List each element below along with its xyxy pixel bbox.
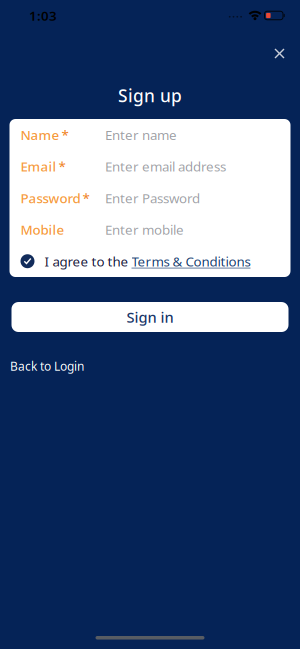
staticText: * [82,189,89,207]
button[interactable]: Password [9,182,290,214]
button[interactable]: Email [9,151,290,182]
staticText: Enter Password [105,189,200,207]
button[interactable]: Close [268,42,290,64]
staticText: Sign up [118,84,182,107]
staticText: Back to Login [10,358,84,374]
button[interactable]: Sign in [11,302,288,332]
staticText: Enter name [105,126,177,144]
staticText: * [61,126,68,144]
staticText: Enter email address [105,158,226,175]
staticText: Name [20,126,59,144]
staticText: Password [20,189,80,207]
staticText: Sign in [126,307,173,327]
staticText: 1:03 [29,7,57,24]
staticText: I agree to the [44,252,131,270]
button[interactable]: Back to Login [10,358,84,374]
staticText: Mobile [20,221,64,238]
button[interactable]: Name [9,119,290,151]
staticText: * [58,158,65,175]
staticText: Enter mobile [105,221,184,238]
button[interactable]: Mobile [9,214,290,245]
staticText: Email [20,158,56,175]
staticText: Terms & Conditions [131,252,250,270]
button[interactable]: I agree to the [9,245,290,277]
